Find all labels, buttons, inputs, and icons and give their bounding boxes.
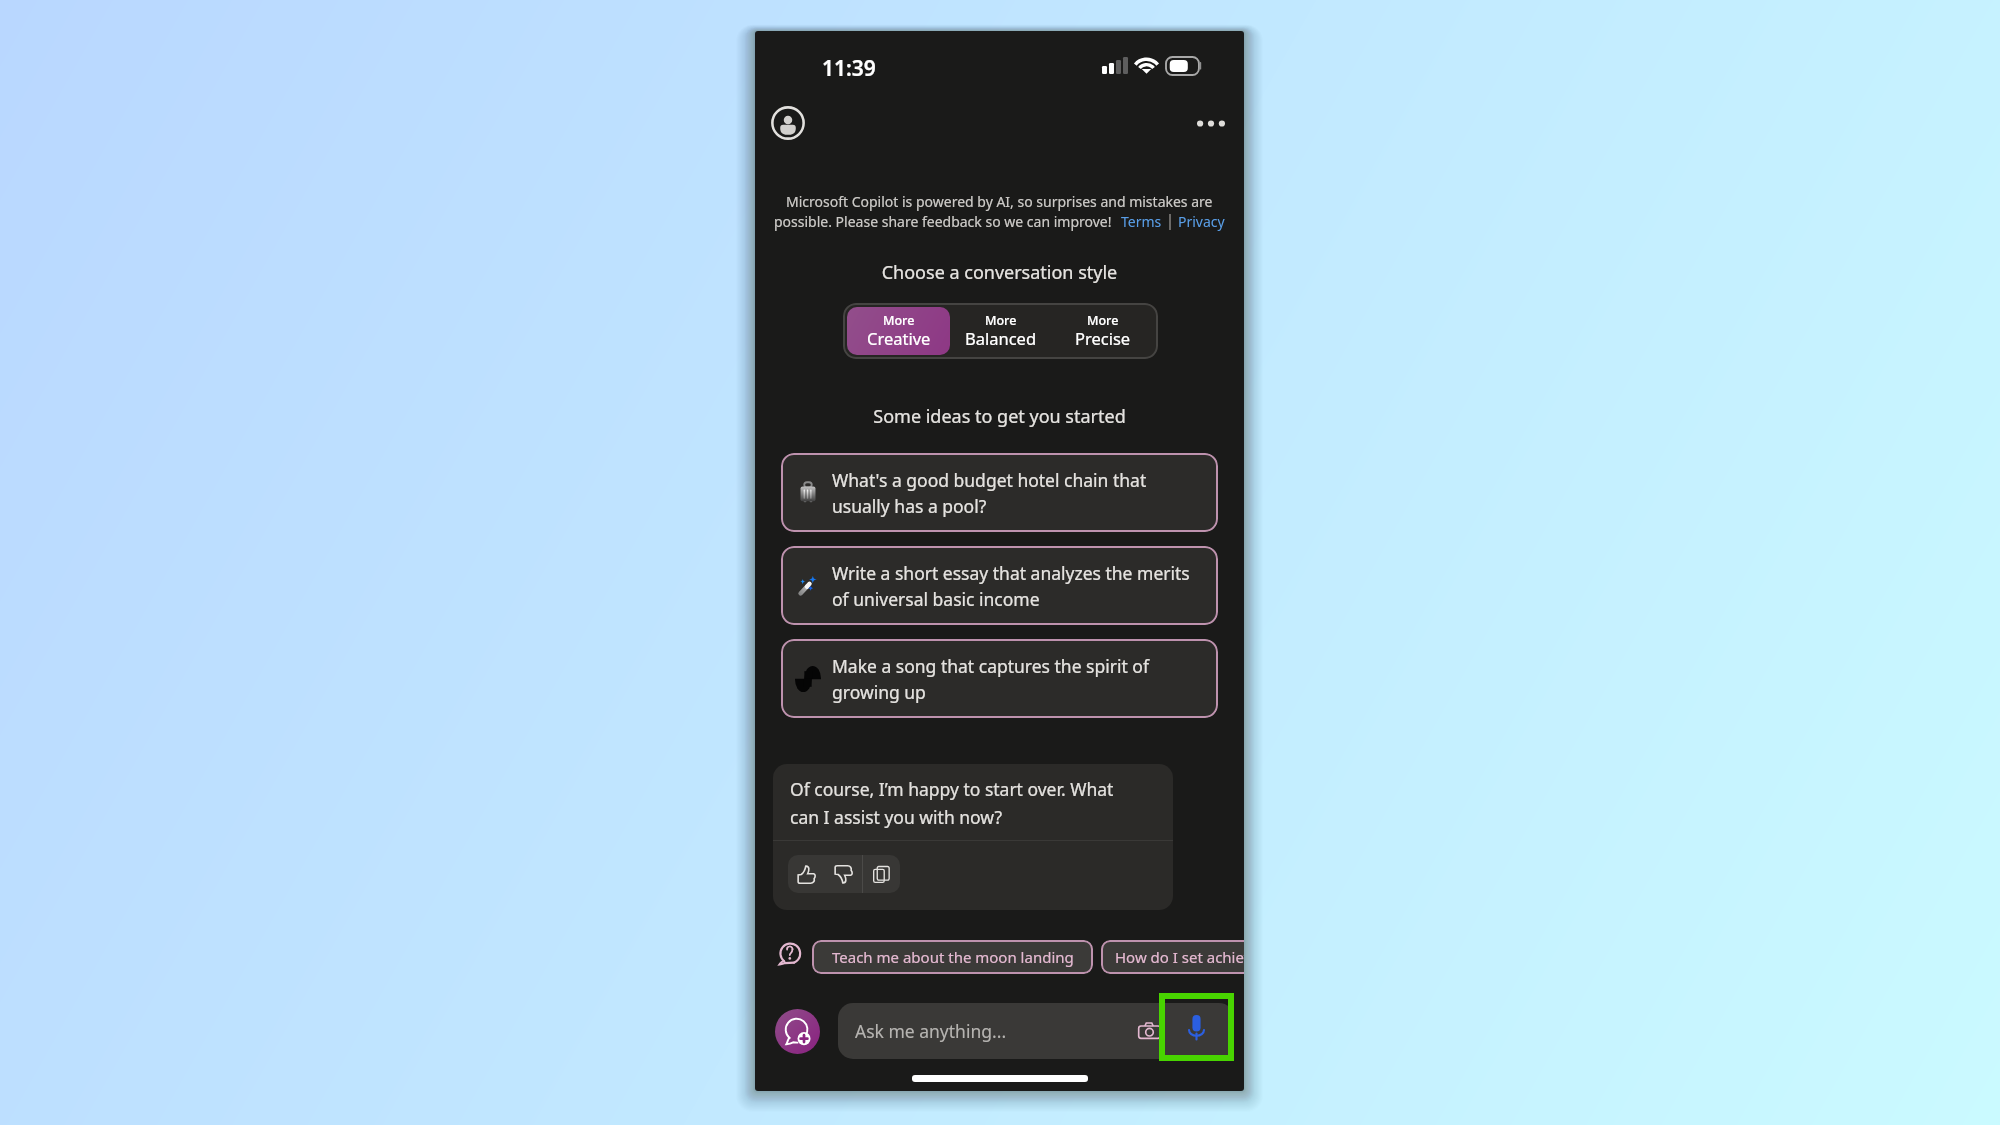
staticText: More <box>1087 312 1119 329</box>
button[interactable]: Suggested prompts <box>776 941 802 967</box>
staticText: Write a short essay that analyzes the me… <box>832 561 1190 611</box>
button[interactable]: How do I set achievable goals <box>1101 940 1244 974</box>
button[interactable]: Account <box>771 106 805 140</box>
button[interactable]: Privacy <box>1178 212 1225 231</box>
button[interactable]: Copy <box>863 855 900 893</box>
button[interactable]: Ask me anything... <box>838 1003 1234 1059</box>
button[interactable]: Voice input <box>1159 993 1234 1061</box>
staticText: How do I set achievable goals <box>1115 947 1244 967</box>
button[interactable]: What's a good budget hotel chain that us… <box>781 453 1218 532</box>
button[interactable]: Terms <box>1121 212 1162 231</box>
staticText: Microsoft Copilot is powered by AI, so s… <box>786 192 1213 211</box>
staticText: Some ideas to get you started <box>755 404 1244 429</box>
button[interactable]: More <box>847 307 950 355</box>
button[interactable]: More options <box>1193 110 1229 136</box>
staticText: 11:39 <box>822 54 876 83</box>
button[interactable]: Like <box>788 855 825 893</box>
staticText: possible. Please share feedback so we ca… <box>774 212 1112 231</box>
staticText: Teach me about the moon landing <box>832 947 1074 967</box>
staticText: Creative <box>867 327 931 349</box>
staticText: Balanced <box>965 327 1037 349</box>
staticText: More <box>883 312 915 329</box>
button[interactable]: Write a short essay that analyzes the me… <box>781 546 1218 625</box>
button[interactable]: Camera <box>1138 1020 1161 1043</box>
staticText: Make a song that captures the spirit of … <box>832 654 1149 704</box>
button[interactable]: More <box>950 307 1052 355</box>
button[interactable]: Make a song that captures the spirit of … <box>781 639 1218 718</box>
button[interactable]: Dislike <box>825 855 862 893</box>
staticText: Choose a conversation style <box>755 260 1244 285</box>
button[interactable]: Teach me about the moon landing <box>812 940 1093 974</box>
button[interactable]: New chat <box>775 1009 820 1054</box>
staticText: More <box>985 312 1017 329</box>
button[interactable]: More <box>1052 307 1154 355</box>
staticText: What's a good budget hotel chain that us… <box>832 468 1147 518</box>
staticText: Precise <box>1075 327 1131 349</box>
staticText: Ask me anything... <box>855 1019 1007 1043</box>
staticText: Of course, I’m happy to start over. What… <box>790 777 1114 829</box>
